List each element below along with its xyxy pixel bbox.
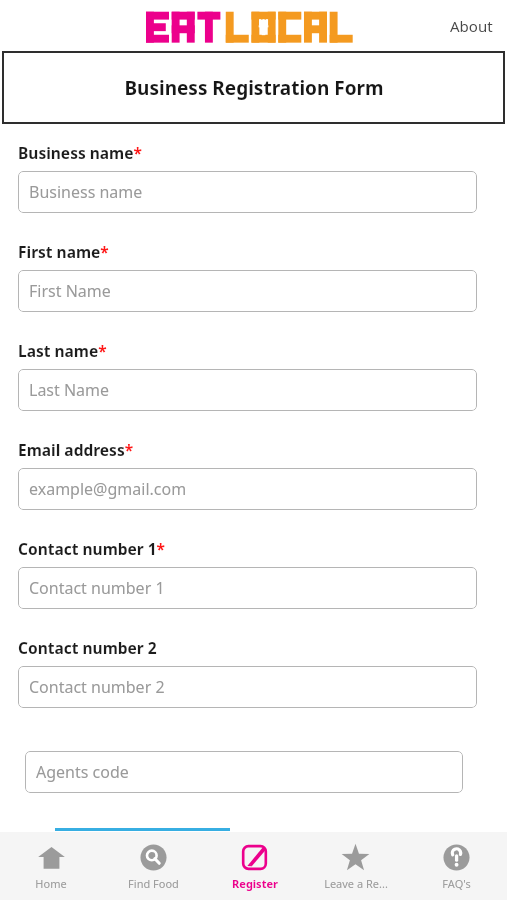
button[interactable]: Register (204, 832, 305, 900)
staticText: Business name (29, 181, 143, 203)
staticText: Register (232, 876, 278, 891)
staticText: Business name* (18, 142, 142, 163)
button[interactable]: Contact number 1 (18, 567, 477, 609)
button[interactable]: Last Name (18, 369, 477, 411)
staticText: Last Name (29, 379, 110, 401)
staticText: Email address* (18, 439, 134, 460)
staticText: Contact number 1 (29, 577, 165, 599)
button[interactable]: About (436, 8, 507, 44)
staticText: Find Food (128, 876, 179, 891)
staticText: Last name* (18, 340, 107, 361)
staticText: Business Registration Form (124, 75, 384, 101)
staticText: FAQ's (442, 876, 471, 891)
staticText: Contact number 2 (18, 637, 157, 658)
button[interactable]: Agents code (25, 751, 463, 793)
staticText: Leave a Re... (324, 876, 388, 891)
staticText: example@gmail.com (29, 478, 187, 500)
staticText: About (450, 16, 493, 36)
button[interactable]: Contact number 2 (18, 666, 477, 708)
staticText: First name* (18, 241, 109, 262)
staticText: Contact number 2 (29, 676, 165, 698)
button[interactable]: Find Food (102, 832, 204, 900)
staticText: Contact number 1* (18, 538, 166, 559)
button[interactable]: First Name (18, 270, 477, 312)
button[interactable]: Leave a Re... (305, 832, 406, 900)
button[interactable]: FAQ's (406, 832, 507, 900)
staticText: Agents code (36, 761, 129, 783)
button[interactable]: Business name (18, 171, 477, 213)
staticText: Home (35, 876, 67, 891)
button[interactable]: Home (0, 832, 102, 900)
staticText: First Name (29, 280, 111, 302)
button[interactable]: example@gmail.com (18, 468, 477, 510)
